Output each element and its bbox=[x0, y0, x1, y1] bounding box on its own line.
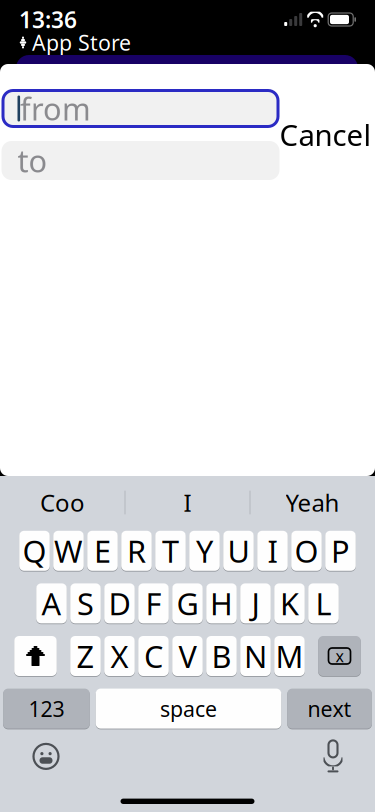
button[interactable]: J bbox=[240, 583, 271, 624]
button[interactable]: Y bbox=[189, 530, 220, 572]
button[interactable]: O bbox=[291, 530, 322, 572]
staticText: S bbox=[77, 583, 94, 624]
staticText: App Store bbox=[32, 28, 131, 57]
button[interactable]: K bbox=[274, 583, 305, 624]
button[interactable]: next bbox=[287, 688, 372, 729]
button[interactable]: N bbox=[240, 635, 271, 677]
staticText: x bbox=[335, 645, 343, 667]
button[interactable]: R bbox=[121, 530, 152, 572]
staticText: 123 bbox=[28, 694, 64, 723]
button[interactable]: Delete bbox=[318, 635, 361, 677]
staticText: C bbox=[144, 636, 163, 676]
button[interactable]: from bbox=[1, 89, 279, 128]
staticText: P bbox=[331, 530, 350, 571]
staticText: F bbox=[145, 583, 161, 624]
staticText: I bbox=[183, 487, 191, 518]
staticText: B bbox=[211, 636, 231, 676]
button[interactable]: P bbox=[325, 530, 356, 572]
staticText: Y bbox=[196, 530, 213, 571]
button[interactable]: Coo bbox=[0, 480, 124, 524]
button[interactable]: V bbox=[172, 635, 203, 677]
button[interactable]: Q bbox=[19, 530, 50, 572]
staticText: Z bbox=[76, 636, 94, 676]
button[interactable]: E bbox=[87, 530, 118, 572]
staticText: T bbox=[162, 530, 179, 571]
button[interactable]: Cancel bbox=[279, 112, 371, 156]
staticText: D bbox=[108, 583, 130, 624]
button[interactable]: space bbox=[96, 688, 281, 729]
staticText: I bbox=[267, 530, 277, 571]
button[interactable]: Shift bbox=[14, 635, 57, 677]
button[interactable]: Dictate bbox=[322, 739, 344, 773]
staticText: E bbox=[94, 530, 111, 571]
staticText: A bbox=[41, 583, 61, 624]
button[interactable]: H bbox=[206, 583, 237, 624]
staticText: X bbox=[110, 636, 128, 676]
button[interactable]: Yeah bbox=[250, 480, 374, 524]
staticText: space bbox=[160, 694, 217, 723]
staticText: to bbox=[17, 140, 47, 181]
staticText: from bbox=[20, 88, 91, 129]
button[interactable]: M bbox=[274, 635, 305, 677]
button[interactable]: Emoji bbox=[31, 741, 61, 771]
staticText: Yeah bbox=[285, 487, 339, 518]
staticText: U bbox=[227, 530, 249, 571]
button[interactable]: C bbox=[138, 635, 169, 677]
staticText: 13:36 bbox=[19, 4, 77, 34]
staticText: W bbox=[54, 530, 83, 571]
button[interactable]: W bbox=[53, 530, 84, 572]
staticText: M bbox=[275, 636, 303, 676]
button[interactable]: X bbox=[104, 635, 135, 677]
staticText: G bbox=[176, 583, 198, 624]
staticText: J bbox=[251, 583, 259, 624]
staticText: N bbox=[244, 636, 267, 676]
button[interactable]: I bbox=[125, 480, 249, 524]
staticText: K bbox=[280, 583, 299, 624]
staticText: H bbox=[210, 583, 233, 624]
staticText: Q bbox=[22, 530, 46, 571]
button[interactable]: T bbox=[155, 530, 186, 572]
button[interactable]: to bbox=[1, 141, 279, 180]
button[interactable]: Z bbox=[70, 635, 101, 677]
button[interactable]: D bbox=[104, 583, 135, 624]
button[interactable]: U bbox=[223, 530, 254, 572]
button[interactable]: 123 bbox=[3, 688, 90, 729]
staticText: next bbox=[308, 694, 352, 723]
button[interactable]: F bbox=[138, 583, 169, 624]
staticText: R bbox=[127, 530, 146, 571]
button[interactable]: S bbox=[70, 583, 101, 624]
staticText: L bbox=[315, 583, 331, 624]
button[interactable]: L bbox=[308, 583, 339, 624]
staticText: O bbox=[294, 530, 318, 571]
staticText: Cancel bbox=[279, 115, 371, 154]
button[interactable]: G bbox=[172, 583, 203, 624]
button[interactable]: I bbox=[257, 530, 288, 572]
staticText: V bbox=[178, 636, 196, 676]
button[interactable]: A bbox=[36, 583, 67, 624]
staticText: Coo bbox=[40, 487, 85, 518]
button[interactable]: B bbox=[206, 635, 237, 677]
